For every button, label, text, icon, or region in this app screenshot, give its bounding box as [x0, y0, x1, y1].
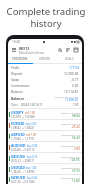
staticText: ORDERS	[39, 57, 51, 61]
staticText: USDJPY	[11, 110, 24, 115]
staticText: DEALS	[65, 57, 74, 61]
staticText: USDCAD	[11, 165, 25, 170]
staticText: sell 1.00	[25, 111, 35, 115]
staticText: 0.00	[72, 84, 79, 88]
staticText: 2024.03.04 13:55	[61, 155, 80, 158]
staticText: 2024.02.28 15:18	[61, 176, 80, 179]
staticText: 10 114.81	[64, 90, 79, 94]
staticText: Balance	[11, 90, 23, 94]
button[interactable]: GBPUSD	[8, 131, 82, 141]
staticText: 0.65440 → 0.65110	[11, 148, 35, 152]
staticText: MetaQuotes-Demo	[19, 51, 45, 55]
staticText: Commission	[11, 84, 30, 88]
button[interactable]: USDCAD	[8, 164, 82, 174]
button[interactable]: ORDERS	[32, 55, 57, 63]
staticText: GBPUSD	[11, 132, 25, 137]
staticText: 2035.22 → 2048.11	[11, 159, 35, 163]
staticText: -0.77	[71, 78, 79, 82]
button[interactable]: NZDUSD	[8, 175, 82, 184]
staticText: XAUUSD	[11, 154, 26, 159]
staticText: buy 0.40	[27, 176, 38, 180]
staticText: 12.80	[72, 179, 80, 183]
staticText: 2024.01.04 14:17:52	[55, 95, 79, 98]
staticText: EURUSD	[11, 121, 25, 126]
staticText: 0.61120 → 0.61440	[11, 180, 35, 184]
staticText: buy 0.10	[27, 155, 38, 159]
staticText: Profit	[11, 66, 20, 70]
staticText: Swap	[11, 78, 20, 82]
staticText: buy 1.00	[26, 166, 37, 170]
staticText: 2024.03.06 11:02	[61, 144, 80, 147]
staticText: 1.08542 → 1.08221	[11, 126, 35, 130]
staticText: 1.00	[73, 103, 79, 107]
button[interactable]: DEALS	[57, 55, 82, 63]
staticText: 2024.01.04 14:17	[21, 103, 43, 107]
button[interactable]: Search	[56, 46, 64, 54]
staticText: -9.90	[73, 147, 80, 151]
staticText: Complete trading history	[0, 5, 92, 30]
staticText: 57.30	[72, 169, 80, 173]
staticText: 1.34220 → 1.34990	[11, 170, 35, 174]
staticText: 1.27645 → 1.27101	[11, 137, 35, 141]
staticText: 54.40	[72, 136, 80, 140]
staticText: 10 000.00	[65, 98, 79, 101]
staticText: 2024.03.11 09:13	[61, 122, 80, 125]
staticText: buy 0.30	[27, 144, 38, 148]
staticText: 2024.03.12 14:22	[61, 111, 80, 114]
staticText: Deposit	[11, 72, 23, 76]
button[interactable]: USDJPY	[8, 109, 82, 119]
staticText: NZDUSD	[11, 175, 26, 180]
button[interactable]: Open menu	[11, 47, 17, 53]
staticText: 128.90	[70, 158, 80, 162]
button[interactable]: AUDUSD	[8, 142, 82, 152]
staticText: POSITIONS	[12, 57, 28, 61]
staticText: -25.20	[71, 125, 80, 129]
staticText: 98.84	[72, 114, 80, 118]
button[interactable]: Sort	[64, 46, 72, 54]
staticText: 2024.03.08 17:40	[61, 133, 80, 136]
button[interactable]: Calendar	[72, 46, 80, 54]
staticText: Open	[11, 103, 18, 107]
button[interactable]: XAUUSD	[8, 153, 82, 163]
button[interactable]: EURUSD	[8, 120, 82, 130]
staticText: 12 000.00	[64, 72, 79, 76]
staticText: AUDUSD	[11, 143, 26, 148]
staticText: 131.876 → 130.888	[11, 115, 35, 119]
staticText: sell 1.00	[26, 133, 36, 137]
staticText: 19:30	[12, 40, 21, 44]
button[interactable]: POSITIONS	[8, 55, 32, 63]
staticText: buy 0.50	[26, 122, 37, 126]
staticText: Balance	[11, 96, 25, 101]
staticText: 2024.03.01 08:31	[61, 166, 80, 169]
staticText: 177.58	[69, 66, 79, 70]
staticText: 88312	[19, 46, 30, 51]
